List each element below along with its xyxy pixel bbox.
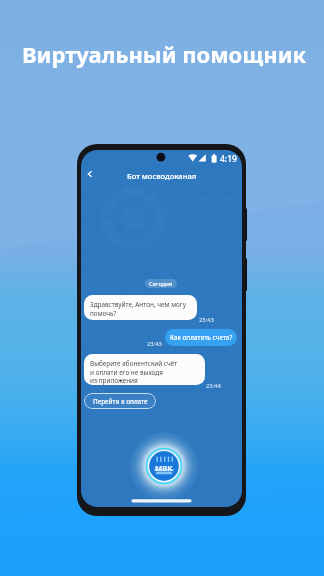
staticText: Перейти к оплате — [93, 397, 148, 406]
staticText: Сегодня — [149, 280, 173, 288]
staticText: 23:43 — [199, 316, 214, 324]
button[interactable]: Перейти к оплате — [84, 393, 156, 409]
staticText: Выберите абонентский счёт и оплати его н… — [90, 359, 178, 384]
staticText: 4:19 — [220, 153, 237, 165]
staticText: 23:43 — [147, 340, 162, 348]
staticText: 23:44 — [206, 382, 221, 390]
staticText: МВК — [155, 463, 173, 473]
staticText: Как оплатить счета? — [170, 333, 233, 342]
button[interactable]: Back — [81, 165, 99, 183]
staticText: Виртуальный помощник — [22, 39, 307, 69]
staticText: Бот мосводоканал — [127, 171, 197, 181]
staticText: Здравствуйте, Антон, чем могу помочь? — [90, 300, 186, 317]
